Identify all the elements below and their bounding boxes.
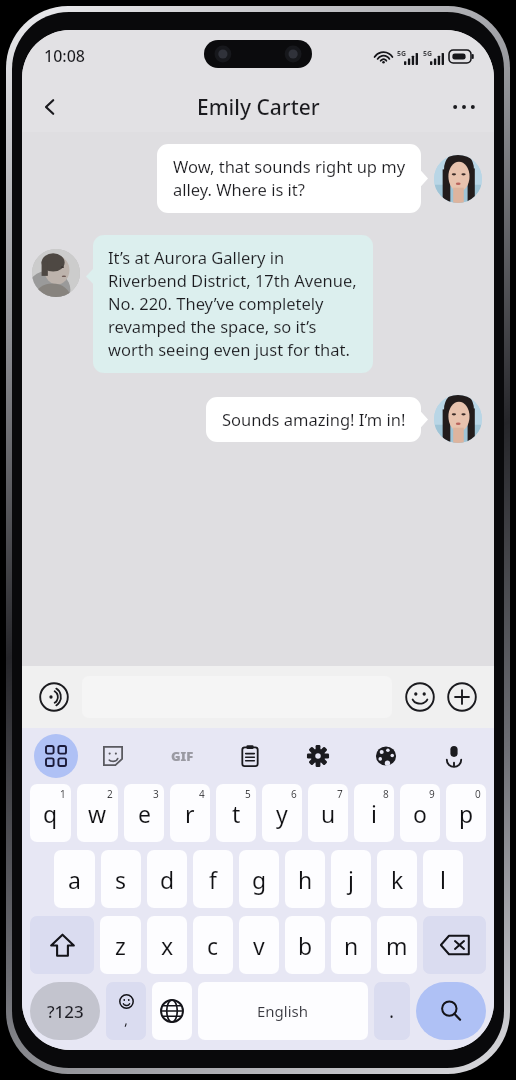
staticText: u — [321, 798, 336, 829]
staticText: Sounds amazing! I’m in! — [222, 408, 406, 430]
button[interactable]: c — [193, 916, 233, 974]
button[interactable]: y — [262, 784, 302, 842]
staticText: q — [43, 798, 58, 829]
staticText: 5 — [245, 787, 251, 801]
staticText: ?123 — [47, 1000, 84, 1023]
button[interactable]: z — [100, 916, 141, 974]
button[interactable]: h — [285, 850, 325, 908]
staticText: Wow, that sounds right up my alley. Wher… — [173, 155, 406, 201]
staticText: j — [348, 864, 354, 895]
button[interactable]: GIF — [160, 734, 204, 778]
staticText: w — [88, 798, 107, 829]
button[interactable]: . — [374, 982, 410, 1040]
staticText: x — [161, 930, 174, 961]
button[interactable]: l — [423, 850, 463, 908]
staticText: 5G — [397, 49, 407, 59]
button[interactable]: d — [147, 850, 187, 908]
staticText: l — [440, 864, 446, 895]
button[interactable]: Voice input — [36, 679, 72, 715]
button[interactable]: Wow, that sounds right up my alley. Wher… — [157, 144, 428, 213]
staticText: s — [115, 864, 127, 895]
button[interactable]: n — [331, 916, 371, 974]
staticText: It’s at Aurora Gallery in Riverbend Dist… — [108, 246, 357, 361]
button[interactable]: Clipboard — [228, 734, 272, 778]
button[interactable]: Backspace — [423, 916, 486, 974]
staticText: i — [371, 798, 377, 829]
staticText: 8 — [383, 787, 389, 801]
staticText: , — [124, 1009, 129, 1029]
button[interactable]: It’s at Aurora Gallery in Riverbend Dist… — [86, 235, 373, 373]
staticText: o — [413, 798, 427, 829]
button[interactable]: Apps — [34, 734, 78, 778]
staticText: English — [257, 1001, 309, 1021]
button[interactable]: t — [216, 784, 256, 842]
button[interactable]: Voice typing — [432, 734, 476, 778]
button[interactable]: m — [377, 916, 417, 974]
button[interactable]: k — [377, 850, 417, 908]
button[interactable]: q — [30, 784, 71, 842]
staticText: 6 — [291, 787, 297, 801]
staticText: 5G — [423, 49, 433, 59]
button[interactable]: r — [170, 784, 210, 842]
button[interactable]: w — [77, 784, 118, 842]
staticText: b — [298, 930, 313, 961]
button[interactable]: a — [54, 850, 95, 908]
staticText: p — [459, 798, 474, 829]
staticText: e — [138, 798, 151, 829]
button[interactable]: o — [400, 784, 440, 842]
button[interactable]: Emoji — [402, 679, 438, 715]
staticText: 9 — [429, 787, 435, 801]
staticText: 10:08 — [44, 45, 85, 67]
button[interactable]: Add attachment — [444, 679, 480, 715]
staticText: c — [207, 930, 219, 961]
button[interactable]: Settings — [296, 734, 340, 778]
button[interactable]: g — [239, 850, 279, 908]
staticText: g — [252, 864, 267, 895]
staticText: h — [298, 864, 313, 895]
button[interactable]: Stickers — [91, 734, 135, 778]
staticText: . — [389, 998, 395, 1024]
staticText: a — [68, 864, 81, 895]
button[interactable]: Sounds amazing! I’m in! — [206, 397, 428, 442]
staticText: z — [115, 930, 126, 961]
staticText: 7 — [337, 787, 343, 801]
staticText: GIF — [171, 747, 194, 765]
staticText: t — [232, 798, 241, 829]
button[interactable]: ?123 — [30, 982, 100, 1040]
button[interactable]: u — [308, 784, 348, 842]
staticText: r — [185, 798, 195, 829]
staticText: n — [344, 930, 359, 961]
button[interactable]: b — [285, 916, 325, 974]
staticText: v — [253, 930, 265, 961]
staticText: 0 — [475, 787, 481, 801]
button[interactable]: Back — [28, 85, 72, 129]
button[interactable]: i — [354, 784, 394, 842]
button[interactable]: p — [446, 784, 486, 842]
staticText: 4 — [199, 787, 205, 801]
button[interactable]: Change language — [152, 982, 192, 1040]
staticText: 2 — [107, 787, 113, 801]
staticText: f — [209, 864, 217, 895]
button[interactable]: Themes — [364, 734, 408, 778]
button[interactable]: j — [331, 850, 371, 908]
button[interactable]: f — [193, 850, 233, 908]
staticText: 3 — [153, 787, 159, 801]
staticText: 1 — [60, 787, 66, 801]
staticText: Emily Carter — [197, 93, 320, 122]
button[interactable]: s — [101, 850, 141, 908]
button[interactable]: English — [198, 982, 368, 1040]
staticText: k — [391, 864, 404, 895]
button[interactable]: x — [147, 916, 187, 974]
button[interactable]: v — [239, 916, 279, 974]
staticText: m — [386, 930, 408, 961]
button[interactable]: e — [124, 784, 164, 842]
button[interactable]: Search — [416, 982, 486, 1040]
button[interactable]: Emoji and comma — [106, 982, 146, 1040]
button[interactable]: More options — [442, 85, 486, 129]
staticText: d — [160, 864, 175, 895]
button[interactable]: Shift — [30, 916, 94, 974]
staticText: y — [276, 798, 288, 829]
